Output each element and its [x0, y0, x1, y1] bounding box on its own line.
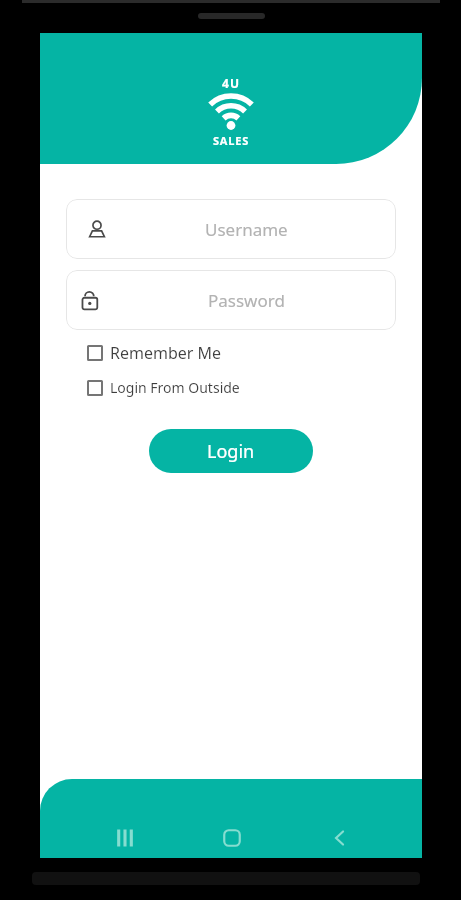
- button[interactable]: Login: [149, 429, 313, 473]
- staticText: 4U: [222, 75, 241, 91]
- button[interactable]: Back: [312, 811, 365, 858]
- button[interactable]: Username: [66, 199, 396, 259]
- button[interactable]: Recents: [98, 811, 151, 858]
- button[interactable]: Remember Me: [87, 342, 222, 364]
- button[interactable]: Password: [66, 270, 396, 330]
- button[interactable]: Login From Outside: [87, 378, 240, 397]
- staticText: SALES: [213, 133, 250, 148]
- staticText: Remember Me: [110, 342, 222, 364]
- staticText: Login From Outside: [110, 378, 240, 397]
- staticText: Password: [208, 289, 285, 312]
- staticText: Username: [205, 218, 288, 241]
- button[interactable]: Home: [205, 811, 258, 858]
- staticText: Login: [207, 439, 255, 464]
